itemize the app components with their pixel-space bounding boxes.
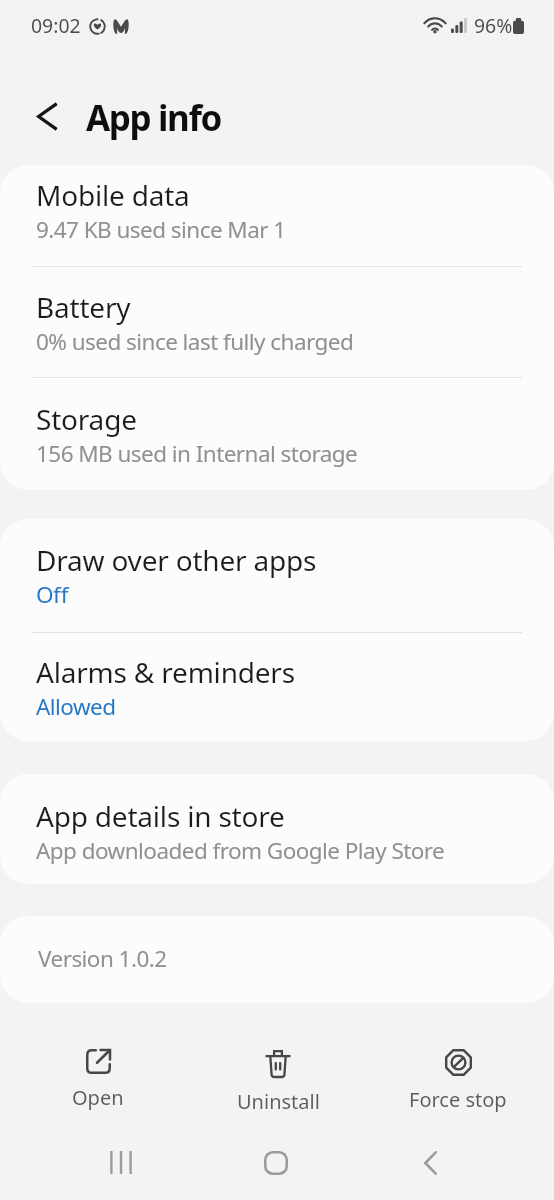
button[interactable]: Uninstall bbox=[188, 1030, 368, 1115]
staticText: 0% used since last fully charged bbox=[36, 326, 354, 357]
button[interactable]: Draw over other apps bbox=[0, 530, 554, 640]
button[interactable]: Back bbox=[22, 91, 72, 141]
staticText: Allowed bbox=[36, 691, 116, 722]
staticText: App details in store bbox=[36, 797, 285, 835]
button[interactable]: Recents bbox=[92, 1134, 149, 1191]
staticText: App downloaded from Google Play Store bbox=[36, 835, 445, 866]
button[interactable]: Battery bbox=[0, 277, 554, 387]
staticText: Uninstall bbox=[237, 1088, 320, 1115]
staticText: Mobile data bbox=[36, 176, 190, 214]
button[interactable]: Storage bbox=[0, 389, 554, 490]
button[interactable]: App details in store bbox=[0, 786, 554, 884]
staticText: Force stop bbox=[409, 1086, 507, 1113]
button[interactable]: Mobile data bbox=[0, 165, 554, 275]
staticText: Battery bbox=[36, 288, 131, 326]
button[interactable]: Force stop bbox=[368, 1030, 548, 1113]
staticText: Version 1.0.2 bbox=[38, 943, 167, 974]
staticText: Alarms & reminders bbox=[36, 653, 295, 691]
staticText: App info bbox=[86, 94, 221, 142]
staticText: 09:02 bbox=[31, 12, 81, 38]
button[interactable]: Home bbox=[247, 1134, 304, 1191]
staticText: Storage bbox=[36, 400, 137, 438]
staticText: Off bbox=[36, 579, 68, 610]
button[interactable]: Back bbox=[402, 1134, 459, 1191]
button[interactable]: Alarms & reminders bbox=[0, 642, 554, 741]
staticText: 96% bbox=[474, 12, 513, 38]
button[interactable]: Open bbox=[8, 1030, 188, 1111]
staticText: Draw over other apps bbox=[36, 541, 317, 579]
staticText: 9.47 KB used since Mar 1 bbox=[36, 214, 286, 245]
staticText: 156 MB used in Internal storage bbox=[36, 438, 358, 469]
staticText: Open bbox=[72, 1084, 124, 1111]
